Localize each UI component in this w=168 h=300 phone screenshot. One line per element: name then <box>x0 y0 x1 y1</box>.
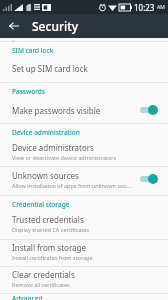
button[interactable]: Trusted credentials <box>0 212 168 235</box>
button[interactable]: Install from storage <box>0 240 168 263</box>
staticText: Credential storage <box>12 200 70 209</box>
staticText: Encrypt phone <box>12 38 50 41</box>
staticText: Advanced <box>12 294 43 300</box>
staticText: Device administration <box>12 128 80 137</box>
button[interactable]: Make passwords visible <box>0 99 168 121</box>
button[interactable]: Device administrators <box>0 140 168 163</box>
staticText: Set up SIM card lock <box>12 63 88 74</box>
staticText: AM <box>157 4 165 11</box>
staticText: 10:23 <box>134 2 155 13</box>
staticText: Clear credentials <box>12 269 75 280</box>
button[interactable]: Clear credentials <box>0 267 168 290</box>
staticText: Install from storage <box>12 242 86 253</box>
button[interactable]: Back <box>5 17 23 35</box>
staticText: SIM card lock <box>12 46 54 55</box>
staticText: View or deactivate device administrators <box>12 154 117 161</box>
button[interactable]: Set up SIM card lock <box>0 58 168 78</box>
staticText: Allow installation of apps from unknown … <box>12 182 133 189</box>
staticText: Install certificates from storage <box>12 254 93 261</box>
staticText: Passwords <box>12 87 46 96</box>
button[interactable]: Unknown sources <box>0 167 168 191</box>
staticText: Device administrators <box>12 142 94 153</box>
staticText: Make passwords visible <box>12 105 101 116</box>
staticText: Unknown sources <box>12 170 79 181</box>
staticText: Security <box>32 18 79 34</box>
staticText: Trusted credentials <box>12 214 84 225</box>
staticText: Remove all certificates <box>12 281 70 288</box>
staticText: Display trusted CA certificates <box>12 226 89 233</box>
